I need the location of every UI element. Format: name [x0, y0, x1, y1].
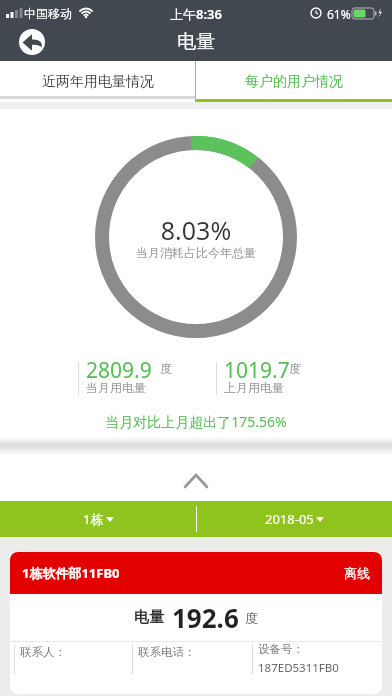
staticText: 当月对比上月超出了175.56% — [0, 412, 392, 431]
button[interactable] — [172, 466, 220, 496]
staticText: 上月用电量 — [224, 380, 284, 395]
staticText: 1栋软件部11FB0 — [22, 564, 120, 582]
staticText: 上午8:36 — [0, 5, 392, 23]
staticText: 联系人： — [20, 645, 66, 659]
staticText: 当月消耗占比今年总量 — [0, 245, 392, 260]
staticText: 近两年用电量情况 — [42, 73, 154, 91]
button[interactable]: 2018-05 — [196, 501, 392, 537]
staticText: 离线 — [344, 565, 370, 581]
staticText: 1栋 — [83, 510, 104, 528]
button[interactable]: 1栋 — [0, 501, 196, 537]
staticText: 2809.9 — [86, 356, 152, 385]
button[interactable]: 近两年用电量情况 — [0, 61, 195, 102]
staticText: 度 — [289, 361, 301, 376]
staticText: 电量 — [0, 30, 392, 54]
staticText: 度 — [245, 610, 258, 626]
staticText: 联系电话： — [138, 645, 196, 659]
staticText: 每户的用户情况 — [245, 73, 343, 91]
staticText: 8.03% — [0, 213, 392, 247]
staticText: 61% — [327, 6, 351, 22]
staticText: 187ED5311FB0 — [258, 660, 339, 676]
staticText: 2018-05 — [265, 510, 314, 528]
staticText: 设备号： — [258, 642, 304, 656]
button[interactable] — [19, 29, 45, 55]
staticText: 电量 — [134, 608, 164, 627]
button[interactable]: 1栋软件部11FB0 — [10, 552, 382, 694]
staticText: 当月用电量 — [86, 380, 146, 395]
staticText: 1019.7 — [224, 356, 290, 385]
staticText: 中国移动 — [24, 6, 72, 21]
button[interactable]: 每户的用户情况 — [196, 61, 392, 102]
staticText: 度 — [160, 361, 172, 376]
staticText: 192.6 — [172, 600, 239, 635]
